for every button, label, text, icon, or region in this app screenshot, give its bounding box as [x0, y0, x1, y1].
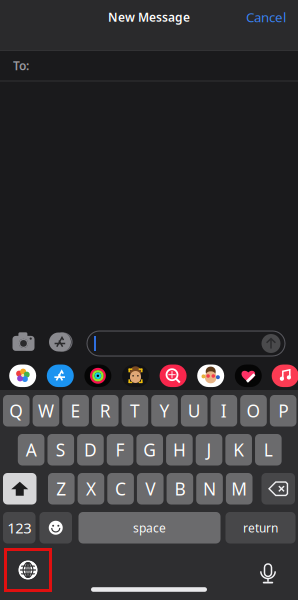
- button[interactable]: G: [136, 434, 163, 465]
- button[interactable]: L: [255, 434, 282, 465]
- staticText: M: [231, 477, 247, 500]
- staticText: W: [38, 399, 54, 422]
- staticText: To:: [13, 57, 29, 73]
- button[interactable]: O: [240, 395, 267, 426]
- button[interactable]: Apps: [48, 332, 71, 352]
- button[interactable]: I: [210, 395, 237, 426]
- button[interactable]: Delete: [261, 473, 295, 504]
- button[interactable]: D: [77, 434, 104, 465]
- button[interactable]: W: [33, 395, 59, 426]
- staticText: B: [174, 477, 185, 500]
- staticText: Q: [9, 399, 23, 422]
- staticText: P: [278, 399, 288, 422]
- button[interactable]: Photos: [9, 365, 36, 387]
- staticText: space: [133, 520, 166, 536]
- staticText: 123: [7, 518, 31, 537]
- staticText: S: [56, 438, 66, 461]
- button[interactable]: space: [78, 512, 220, 543]
- staticText: N: [203, 477, 216, 500]
- staticText: T: [130, 399, 140, 422]
- button[interactable]: Music: [272, 365, 298, 387]
- button[interactable]: 123: [3, 512, 35, 543]
- staticText: X: [86, 477, 96, 500]
- button[interactable]: Memoji: [197, 365, 224, 387]
- button[interactable]: M: [226, 473, 252, 504]
- button[interactable]: Shift: [3, 473, 36, 504]
- staticText: K: [233, 438, 244, 461]
- button[interactable]: Cancel: [238, 1, 294, 33]
- button[interactable]: P: [270, 395, 296, 426]
- button[interactable]: Z: [48, 473, 75, 504]
- button[interactable]: C: [107, 473, 134, 504]
- staticText: O: [246, 399, 260, 422]
- button[interactable]: A: [18, 434, 44, 465]
- staticText: Y: [160, 399, 170, 422]
- staticText: L: [264, 438, 273, 461]
- button[interactable]: V: [137, 473, 163, 504]
- button[interactable]: Images: [160, 365, 187, 387]
- button[interactable]: App Store: [47, 365, 74, 387]
- button[interactable]: F: [107, 434, 133, 465]
- staticText: F: [116, 438, 125, 461]
- staticText: J: [206, 438, 211, 461]
- staticText: D: [84, 438, 97, 461]
- button[interactable]: Camera: [12, 332, 35, 352]
- button[interactable]: Dictate: [260, 560, 276, 580]
- staticText: R: [100, 399, 111, 422]
- staticText: I: [221, 399, 227, 422]
- button[interactable]: K: [225, 434, 252, 465]
- staticText: U: [188, 399, 201, 422]
- staticText: C: [115, 477, 126, 500]
- button[interactable]: return: [225, 512, 295, 543]
- button[interactable]: B: [167, 473, 193, 504]
- button[interactable]: N: [196, 473, 223, 504]
- staticText: Z: [56, 477, 66, 500]
- button[interactable]: X: [78, 473, 104, 504]
- staticText: G: [143, 438, 156, 461]
- button[interactable]: E: [62, 395, 89, 426]
- staticText: Cancel: [246, 8, 286, 26]
- button[interactable]: Next keyboard: [5, 549, 50, 590]
- button[interactable]: Y: [151, 395, 178, 426]
- button[interactable]: Digital Touch: [235, 365, 262, 387]
- button[interactable]: J: [196, 434, 222, 465]
- button[interactable]: Memoji stickers: [122, 365, 149, 387]
- button[interactable]: H: [166, 434, 193, 465]
- staticText: V: [145, 477, 155, 500]
- button[interactable]: Fitness: [84, 365, 111, 387]
- staticText: New Message: [108, 9, 190, 25]
- button[interactable]: Q: [3, 395, 30, 426]
- staticText: A: [26, 438, 37, 461]
- button[interactable]: U: [181, 395, 207, 426]
- button[interactable]: R: [92, 395, 118, 426]
- button[interactable]: Emoji: [39, 512, 72, 543]
- button[interactable]: Send: [261, 334, 280, 353]
- staticText: return: [243, 520, 278, 536]
- button[interactable]: S: [47, 434, 74, 465]
- staticText: H: [173, 438, 186, 461]
- button[interactable]: T: [122, 395, 148, 426]
- staticText: E: [71, 399, 81, 422]
